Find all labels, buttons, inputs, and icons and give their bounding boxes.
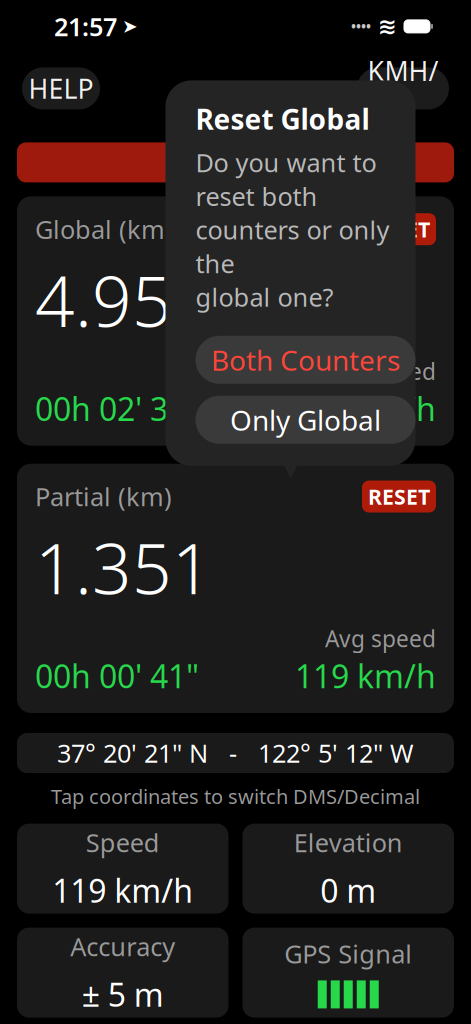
staticText: Both Counters xyxy=(211,341,400,378)
staticText: ➤ xyxy=(122,16,138,37)
button[interactable]: Only Global xyxy=(195,396,415,444)
button[interactable]: RESET xyxy=(362,480,436,512)
staticText: 21:57 xyxy=(54,10,117,43)
staticText: Do you want to reset both counters or on… xyxy=(195,146,389,314)
staticText: 119 km/h xyxy=(295,654,436,697)
staticText: ± 5 m xyxy=(82,973,164,1016)
staticText: Accuracy xyxy=(70,929,175,963)
staticText: ▾ xyxy=(282,447,299,486)
button[interactable]: PAUSE xyxy=(17,142,454,182)
staticText: RESET xyxy=(368,215,430,243)
staticText: Elevation xyxy=(294,825,403,859)
staticText: 116 km/h xyxy=(295,387,436,430)
staticText: RESET xyxy=(368,482,430,511)
staticText: 37° 20' 21" N - 122° 5' 12" W xyxy=(57,736,414,770)
staticText: Speed xyxy=(86,825,160,859)
button[interactable]: HELP xyxy=(22,67,100,109)
staticText: Tap coordinates to switch DMS/Decimal xyxy=(51,783,420,810)
staticText: 00h 02' 35" xyxy=(35,387,199,430)
staticText: HELP xyxy=(28,71,93,106)
staticText: Global (km) xyxy=(35,212,173,246)
staticText: Avg speed xyxy=(325,623,436,653)
staticText: 4.955 xyxy=(35,254,212,346)
staticText: KMH/M xyxy=(367,53,438,124)
staticText: Avg speed xyxy=(325,356,436,386)
staticText: 119 km/h xyxy=(52,869,193,912)
button[interactable]: KMH/M xyxy=(357,67,449,109)
staticText: •••• xyxy=(351,18,371,35)
staticText: Only Global xyxy=(230,401,381,438)
staticText: ≋ xyxy=(378,13,397,39)
button[interactable]: RESET xyxy=(362,213,436,245)
staticText: 1.351 xyxy=(35,521,212,613)
button[interactable]: Both Counters xyxy=(195,336,415,384)
staticText: 0 m xyxy=(320,869,376,912)
staticText: Partial (km) xyxy=(35,480,172,513)
staticText: PAUSE xyxy=(194,145,277,180)
staticText: 00h 00' 41" xyxy=(35,654,199,697)
staticText: Reset Global xyxy=(195,100,369,138)
staticText: GPS Signal xyxy=(284,937,412,970)
button[interactable]: 37° 20' 21" N - 122° 5' 12" W xyxy=(17,733,454,773)
